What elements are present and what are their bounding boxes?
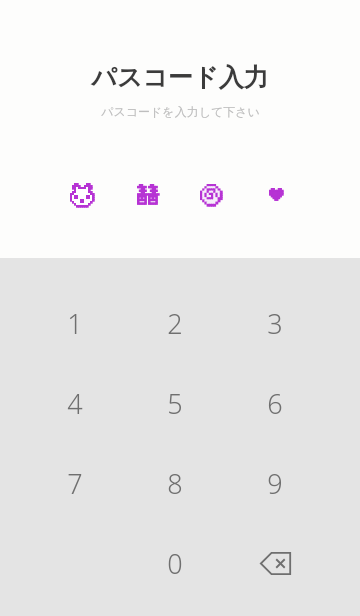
staticText: 3 [267, 305, 283, 342]
button[interactable]: 3 [225, 283, 325, 363]
button[interactable]: 1 [25, 283, 125, 363]
staticText: 5 [167, 385, 183, 422]
staticText: 4 [67, 385, 83, 422]
button[interactable]: 7 [25, 443, 125, 523]
staticText: パスコード入力 [91, 62, 269, 93]
button[interactable]: 2 [125, 283, 225, 363]
staticText: 8 [167, 465, 183, 502]
button[interactable]: 5 [125, 363, 225, 443]
staticText: 0 [167, 545, 183, 582]
button[interactable]: 4 [25, 363, 125, 443]
staticText: 2 [167, 305, 183, 342]
button[interactable]: 9 [225, 443, 325, 523]
staticText: 6 [267, 385, 283, 422]
button[interactable]: 0 [125, 523, 225, 603]
button[interactable]: 6 [225, 363, 325, 443]
staticText: 7 [67, 465, 83, 502]
staticText: パスコードを入力して下さい [101, 104, 260, 119]
staticText: 9 [267, 465, 283, 502]
button[interactable]: Backspace [225, 523, 325, 603]
button[interactable]: 8 [125, 443, 225, 523]
staticText: 1 [67, 305, 83, 342]
